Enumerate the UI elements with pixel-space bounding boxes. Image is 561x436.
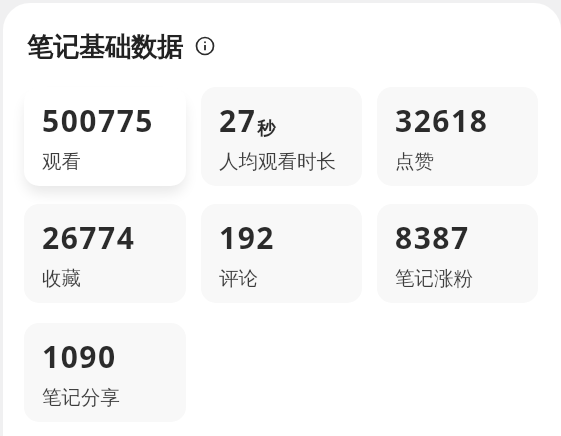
staticText: 笔记分享 <box>42 385 120 410</box>
staticText: 500775 <box>42 100 154 141</box>
staticText: 1090 <box>42 336 117 377</box>
staticText: 8387 <box>395 217 470 258</box>
button[interactable]: 26774 <box>24 204 186 303</box>
button[interactable]: 1090 <box>24 323 186 422</box>
staticText: 笔记基础数据 <box>27 31 183 64</box>
button[interactable]: 8387 <box>377 204 538 303</box>
staticText: 评论 <box>219 266 258 291</box>
staticText: 192 <box>219 217 275 258</box>
staticText: 点赞 <box>395 149 434 174</box>
staticText: 笔记涨粉 <box>395 266 473 291</box>
staticText: 观看 <box>42 149 81 174</box>
staticText: 秒 <box>257 117 276 140</box>
button[interactable]: 500775 <box>24 87 186 186</box>
button[interactable]: 32618 <box>377 87 538 186</box>
staticText: 收藏 <box>42 266 81 291</box>
staticText: 27 <box>219 100 257 141</box>
button[interactable]: 数据说明 <box>195 36 215 56</box>
button[interactable]: 27 <box>201 87 362 186</box>
staticText: 人均观看时长 <box>219 149 336 174</box>
staticText: 32618 <box>395 100 489 141</box>
button[interactable]: 192 <box>201 204 362 303</box>
staticText: 26774 <box>42 217 136 258</box>
